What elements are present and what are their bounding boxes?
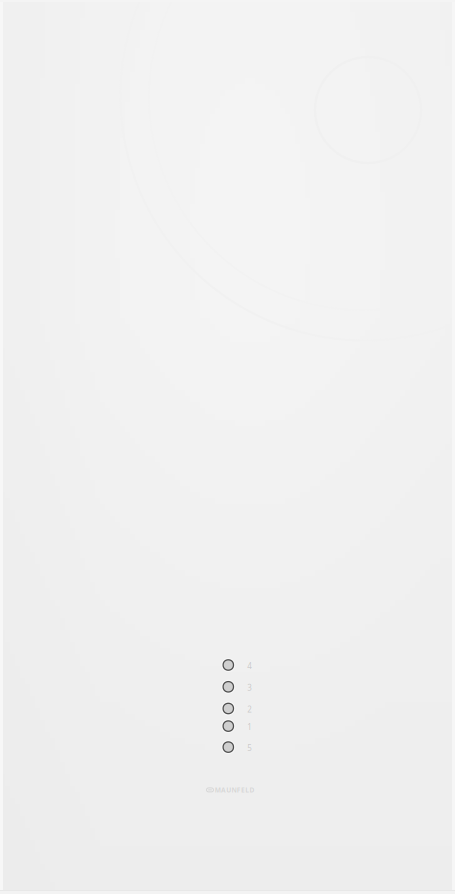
staticText: 3 — [247, 682, 252, 693]
button[interactable]: 3 — [221, 678, 257, 696]
staticText: 5 — [247, 743, 252, 753]
staticText: 1 — [247, 722, 252, 732]
button[interactable]: 4 — [221, 656, 257, 674]
staticText: 4 — [247, 661, 252, 671]
button[interactable]: MAUNFELD — [206, 785, 254, 794]
button[interactable]: 1 — [221, 717, 257, 735]
button[interactable]: 2 — [221, 699, 257, 717]
staticText: MAUNFELD — [215, 785, 254, 794]
staticText: 2 — [247, 704, 252, 715]
button[interactable]: 5 — [221, 738, 257, 756]
